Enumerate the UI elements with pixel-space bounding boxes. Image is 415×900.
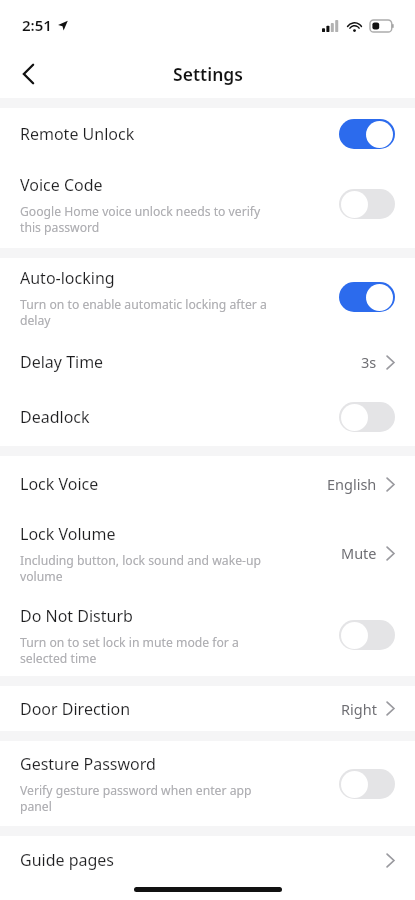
- staticText: Auto-locking: [20, 267, 115, 289]
- staticText: Door Direction: [20, 698, 131, 720]
- staticText: Delay Time: [20, 351, 104, 373]
- staticText: Mute: [341, 543, 377, 563]
- button[interactable]: Auto-locking: [339, 282, 395, 312]
- button[interactable]: Voice Code: [339, 189, 395, 219]
- staticText: English: [327, 474, 377, 494]
- staticText: Turn on to set lock in mute mode for a s…: [20, 634, 239, 666]
- button[interactable]: Voice Code: [0, 160, 415, 248]
- staticText: Turn on to enable automatic locking afte…: [20, 296, 267, 328]
- button[interactable]: Back: [6, 52, 50, 96]
- staticText: Google Home voice unlock needs to verify…: [20, 203, 261, 235]
- staticText: Verify gesture password when enter app p…: [20, 782, 252, 814]
- staticText: Voice Code: [20, 174, 103, 196]
- staticText: Right: [341, 699, 377, 719]
- staticText: Lock Voice: [20, 473, 99, 495]
- staticText: Guide pages: [20, 849, 115, 871]
- button[interactable]: Remote Unlock: [0, 108, 415, 160]
- staticText: Settings: [173, 62, 243, 86]
- button[interactable]: Door Direction: [0, 686, 415, 731]
- staticText: 2:51: [22, 15, 52, 35]
- button[interactable]: Lock Voice: [0, 456, 415, 512]
- staticText: Including button, lock sound and wake-up…: [20, 552, 261, 584]
- button[interactable]: Do Not Disturb: [0, 594, 415, 676]
- staticText: Deadlock: [20, 406, 90, 428]
- button[interactable]: Gesture Password: [339, 769, 395, 799]
- button[interactable]: Guide pages: [0, 836, 415, 884]
- button[interactable]: Delay Time: [0, 336, 415, 388]
- staticText: Gesture Password: [20, 753, 156, 775]
- button[interactable]: Deadlock: [0, 388, 415, 446]
- button[interactable]: Gesture Password: [0, 741, 415, 826]
- button[interactable]: Do Not Disturb: [339, 620, 395, 650]
- button[interactable]: Auto-locking: [0, 258, 415, 336]
- button[interactable]: Deadlock: [339, 402, 395, 432]
- staticText: Do Not Disturb: [20, 605, 133, 627]
- button[interactable]: Lock Volume: [0, 512, 415, 594]
- staticText: 3s: [361, 352, 377, 372]
- button[interactable]: Remote Unlock: [339, 119, 395, 149]
- staticText: Remote Unlock: [20, 123, 135, 145]
- staticText: Lock Volume: [20, 523, 116, 545]
